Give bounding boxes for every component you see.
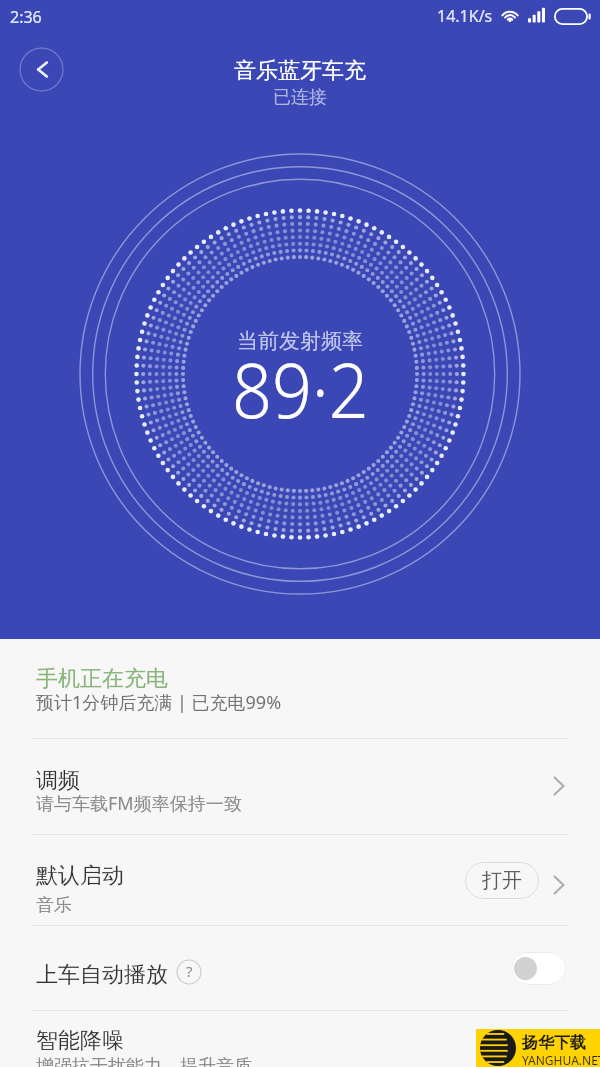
button[interactable]: 调频 bbox=[0, 738, 600, 834]
staticText: 音乐蓝牙车充 bbox=[234, 57, 366, 85]
button[interactable]: 上车自动播放 bbox=[0, 925, 600, 1007]
button[interactable]: 默认启动 bbox=[0, 834, 600, 925]
staticText: 请与车载FM频率保持一致 bbox=[36, 791, 242, 816]
staticText: 89·2 bbox=[232, 337, 369, 441]
staticText: 上车自动播放 bbox=[36, 961, 168, 989]
staticText: 调频 bbox=[36, 767, 80, 795]
staticText: 手机正在充电 bbox=[36, 665, 168, 693]
button[interactable]: Toggle auto play bbox=[511, 952, 566, 985]
staticText: YANGHUA.NET bbox=[522, 1052, 600, 1067]
button[interactable]: 智能降噪 bbox=[0, 1010, 600, 1067]
staticText: 14.1K/s bbox=[437, 5, 493, 27]
staticText: 2:36 bbox=[10, 6, 42, 28]
staticText: 预计1分钟后充满 | 已充电99% bbox=[36, 690, 282, 715]
staticText: 当前发射频率 bbox=[237, 328, 363, 354]
button[interactable]: 打开 bbox=[465, 862, 539, 899]
staticText: 打开 bbox=[482, 868, 522, 893]
staticText: 增强抗干扰能力，提升音质 bbox=[36, 1055, 252, 1067]
button[interactable]: Back bbox=[19, 47, 64, 92]
staticText: 扬华下载 bbox=[522, 1033, 586, 1053]
staticText: ? bbox=[186, 961, 193, 981]
staticText: 已连接 bbox=[273, 86, 327, 109]
staticText: 智能降噪 bbox=[36, 1027, 124, 1055]
staticText: 默认启动 bbox=[36, 862, 124, 890]
button[interactable]: Help bbox=[176, 959, 202, 985]
staticText: 音乐 bbox=[36, 894, 72, 917]
